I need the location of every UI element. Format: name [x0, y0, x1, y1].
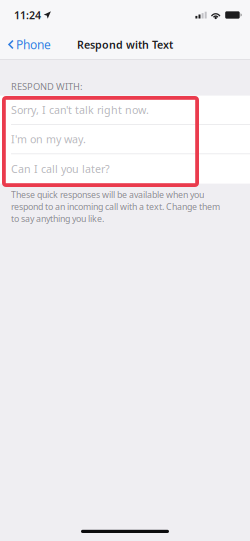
button[interactable]: Can I call you later? [0, 154, 250, 184]
button[interactable]: Phone [0, 30, 59, 59]
button[interactable]: I'm on my way. [0, 125, 250, 154]
staticText: RESPOND WITH: [11, 80, 83, 93]
staticText: Respond with Text [77, 37, 173, 52]
staticText: Phone [16, 36, 51, 52]
staticText: Sorry, I can't talk right now. [11, 103, 149, 117]
staticText: I'm on my way. [11, 132, 86, 146]
staticText: These quick responses will be available … [11, 189, 220, 225]
staticText: Can I call you later? [11, 162, 110, 176]
staticText: 11:24 [14, 8, 41, 22]
button[interactable]: Sorry, I can't talk right now. [0, 96, 250, 125]
